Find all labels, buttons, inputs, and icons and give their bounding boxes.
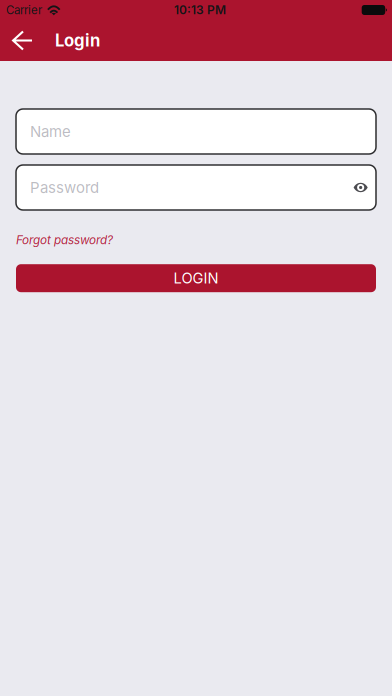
staticText: 10:13 PM <box>174 3 226 17</box>
button[interactable]: Name <box>16 109 376 154</box>
staticText: Password <box>30 178 99 197</box>
button[interactable]: Back <box>0 20 45 61</box>
button[interactable]: LOGIN <box>16 264 376 292</box>
button[interactable]: Password <box>16 165 376 210</box>
button[interactable]: Forgot password? <box>16 229 113 251</box>
staticText: Login <box>55 30 100 51</box>
staticText: LOGIN <box>173 269 218 287</box>
staticText: Forgot password? <box>16 233 113 247</box>
staticText: Carrier <box>6 3 42 17</box>
staticText: Name <box>30 122 71 141</box>
button[interactable]: Show password <box>341 175 368 199</box>
